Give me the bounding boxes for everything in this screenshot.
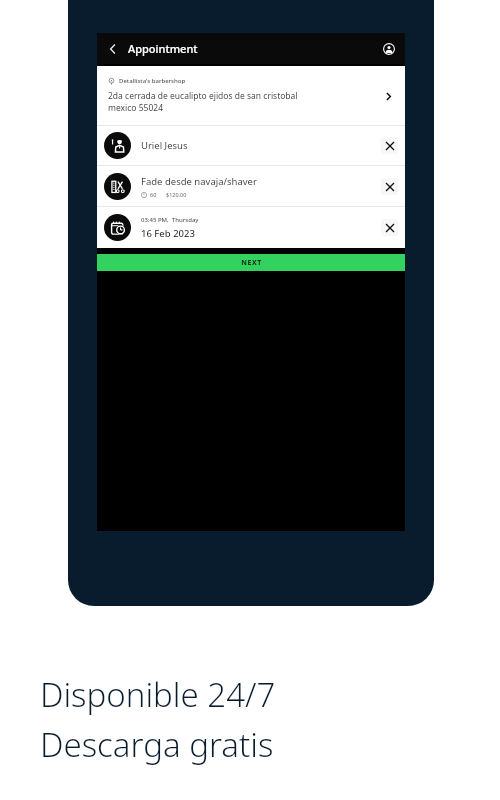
staticText: Descarga gratis bbox=[40, 722, 274, 767]
button[interactable]: Back bbox=[101, 37, 125, 61]
button[interactable]: Account bbox=[378, 38, 400, 60]
staticText: Uriel Jesus bbox=[141, 139, 381, 152]
button[interactable]: Detallista's barbershop bbox=[97, 66, 405, 125]
staticText: Disponible 24/7 bbox=[40, 672, 276, 717]
staticText: 03:45 PM, Thursday bbox=[141, 216, 199, 224]
button[interactable]: Remove bbox=[381, 178, 398, 195]
staticText: 16 Feb 2023 bbox=[141, 227, 195, 240]
staticText: $120.00 bbox=[166, 191, 187, 198]
button[interactable]: Remove bbox=[381, 137, 398, 154]
staticText: 2da cerrada de eucalipto ejidos de san c… bbox=[108, 90, 298, 114]
staticText: Appointment bbox=[128, 41, 198, 56]
button[interactable]: Uriel Jesus bbox=[97, 126, 405, 165]
staticText: NEXT bbox=[241, 258, 262, 268]
button[interactable]: Fade desde navaja/shaver bbox=[97, 166, 405, 206]
staticText: Fade desde navaja/shaver bbox=[141, 175, 257, 188]
button[interactable]: NEXT bbox=[97, 254, 405, 271]
button[interactable]: 03:45 PM, Thursday bbox=[97, 207, 405, 248]
staticText: 60 bbox=[150, 191, 157, 198]
button[interactable]: Remove bbox=[381, 219, 398, 236]
staticText: Detallista's barbershop bbox=[119, 77, 186, 85]
